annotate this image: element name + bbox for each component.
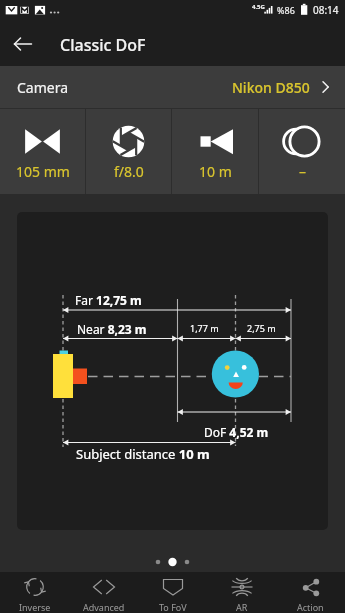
staticText: – — [299, 162, 306, 181]
button[interactable]: – — [259, 108, 345, 194]
staticText: Far 12,75 m — [75, 292, 142, 308]
staticText: Near 8,23 m — [77, 321, 147, 337]
button[interactable]: Inverse — [0, 572, 69, 613]
staticText: Advanced — [83, 601, 125, 613]
staticText: Subject distance 10 m — [76, 445, 210, 463]
staticText: Inverse — [19, 601, 51, 613]
staticText: 1,77 m — [190, 322, 219, 334]
staticText: AR — [236, 601, 248, 613]
button[interactable]: f/8.0 — [86, 108, 171, 194]
staticText: DoF 4,52 m — [204, 424, 269, 440]
staticText: Action — [297, 601, 324, 613]
staticText: 10 m — [199, 162, 232, 181]
button[interactable]: To FoV — [138, 572, 207, 613]
staticText: %86 — [277, 4, 295, 16]
button[interactable]: AR — [207, 572, 276, 613]
staticText: 105 mm — [16, 162, 70, 181]
staticText: 08:14 — [313, 3, 339, 17]
button[interactable]: Back — [11, 32, 35, 56]
button[interactable]: 10 m — [172, 108, 258, 194]
staticText: Nikon D850 — [232, 78, 310, 97]
button[interactable]: 105 mm — [0, 108, 85, 194]
staticText: 2,75 m — [247, 322, 276, 334]
staticText: Camera — [17, 78, 69, 97]
staticText: f/8.0 — [114, 162, 144, 181]
staticText: To FoV — [159, 601, 187, 613]
button[interactable]: Action — [276, 572, 345, 613]
staticText: Classic DoF — [60, 34, 146, 56]
staticText: 4.5G — [252, 3, 265, 11]
button[interactable]: Advanced — [69, 572, 138, 613]
button[interactable]: Camera — [0, 66, 345, 108]
